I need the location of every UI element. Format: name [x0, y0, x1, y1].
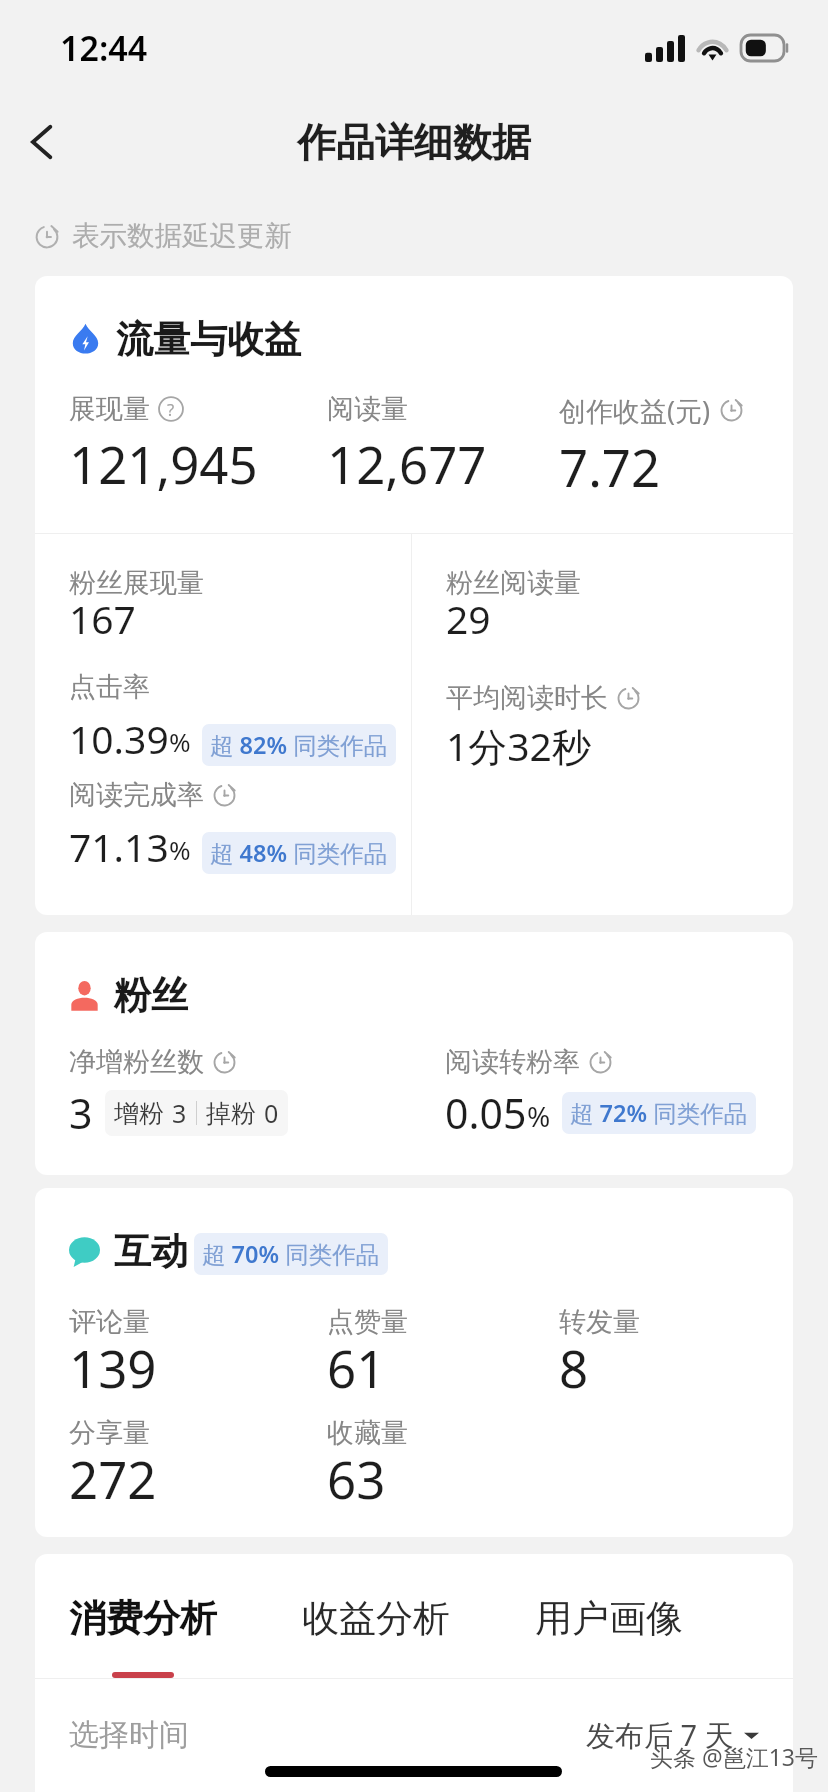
staticText: 收藏量 — [327, 1416, 408, 1450]
button[interactable]: 用户画像 — [517, 1595, 701, 1642]
staticText: 掉粉 — [206, 1098, 256, 1129]
staticText: 粉丝阅读量 — [446, 566, 581, 600]
staticText: 12,677 — [327, 429, 487, 498]
staticText: 63 — [327, 1444, 386, 1513]
staticText: 平均阅读时长 — [446, 681, 608, 715]
staticText: 转发量 — [559, 1305, 640, 1339]
staticText: 展现量 — [69, 392, 150, 426]
staticText: 阅读量 — [327, 392, 408, 426]
staticText: 超 72% 同类作品 — [570, 1097, 748, 1129]
staticText: 7.72 — [559, 432, 661, 501]
staticText: 3 — [172, 1096, 187, 1130]
staticText: 1分32秒 — [446, 719, 591, 772]
staticText: 作品详细数据 — [297, 118, 531, 167]
staticText: 139 — [69, 1333, 157, 1402]
button[interactable]: 发布后 7 天 — [582, 1709, 763, 1761]
staticText: 3 — [69, 1085, 93, 1141]
staticText: 29 — [446, 592, 491, 645]
staticText: 净增粉丝数 — [69, 1045, 204, 1079]
staticText: 0 — [264, 1096, 279, 1130]
staticText: 超 48% 同类作品 — [210, 837, 388, 869]
staticText: ? — [167, 398, 175, 421]
staticText: 超 70% 同类作品 — [202, 1238, 380, 1270]
staticText: 选择时间 — [69, 1716, 189, 1754]
staticText: 点赞量 — [327, 1305, 408, 1339]
button[interactable]: Back — [12, 112, 72, 172]
staticText: 粉丝展现量 — [69, 566, 204, 600]
staticText: 61 — [327, 1333, 386, 1402]
staticText: 流量与收益 — [116, 316, 301, 363]
staticText: 272 — [69, 1444, 157, 1513]
staticText: % — [169, 832, 191, 867]
staticText: % — [169, 724, 191, 759]
staticText: 收益分析 — [302, 1595, 450, 1642]
staticText: % — [527, 1097, 551, 1135]
staticText: 互动 — [114, 1228, 188, 1275]
button[interactable]: 消费分析 — [51, 1595, 235, 1678]
staticText: 阅读转粉率 — [445, 1045, 580, 1079]
staticText: 用户画像 — [535, 1595, 683, 1642]
staticText: 分享量 — [69, 1416, 150, 1450]
staticText: 10.39 — [69, 712, 169, 765]
staticText: 121,945 — [69, 429, 258, 498]
button[interactable]: 收益分析 — [284, 1595, 468, 1642]
staticText: 评论量 — [69, 1305, 150, 1339]
staticText: 12:44 — [60, 25, 148, 71]
staticText: 点击率 — [69, 670, 150, 704]
staticText: 超 82% 同类作品 — [210, 729, 388, 761]
staticText: 消费分析 — [69, 1595, 217, 1642]
staticText: 头条 @邕江13号 — [650, 1741, 818, 1772]
staticText: 0.05 — [445, 1085, 527, 1141]
staticText: 71.13 — [69, 820, 169, 873]
staticText: 创作收益(元) — [559, 392, 711, 429]
button[interactable]: About impressions — [158, 396, 184, 422]
staticText: 发布后 7 天 — [586, 1715, 734, 1755]
staticText: 粉丝 — [114, 972, 188, 1019]
staticText: 阅读完成率 — [69, 778, 204, 812]
staticText: 增粉 — [114, 1098, 164, 1129]
staticText: 8 — [559, 1333, 589, 1402]
staticText: 167 — [69, 592, 136, 645]
staticText: 表示数据延迟更新 — [72, 219, 292, 254]
